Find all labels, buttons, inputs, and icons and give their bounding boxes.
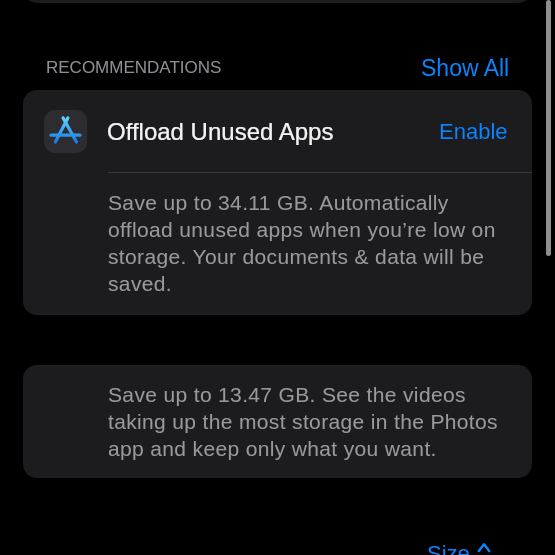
staticText: Save up to 34.11 GB. Automatically offlo… — [108, 191, 504, 295]
staticText: Save up to 13.47 GB. See the videos taki… — [108, 383, 504, 460]
button[interactable]: RECOMMENDATIONS — [46, 58, 222, 77]
button[interactable]: Size — [427, 541, 470, 555]
staticText: RECOMMENDATIONS — [46, 58, 222, 77]
button[interactable]: Save up to 13.47 GB. See the videos taki… — [23, 365, 532, 478]
button[interactable] — [23, 0, 532, 3]
staticText: Show All — [421, 55, 510, 81]
button[interactable]: Sort ascending — [476, 540, 492, 554]
staticText: Offload Unused Apps — [107, 118, 334, 145]
button[interactable]: Offload Unused Apps — [23, 90, 532, 172]
button[interactable]: Show All — [421, 55, 510, 81]
staticText: Size — [427, 541, 470, 555]
staticText: Enable — [439, 119, 508, 144]
